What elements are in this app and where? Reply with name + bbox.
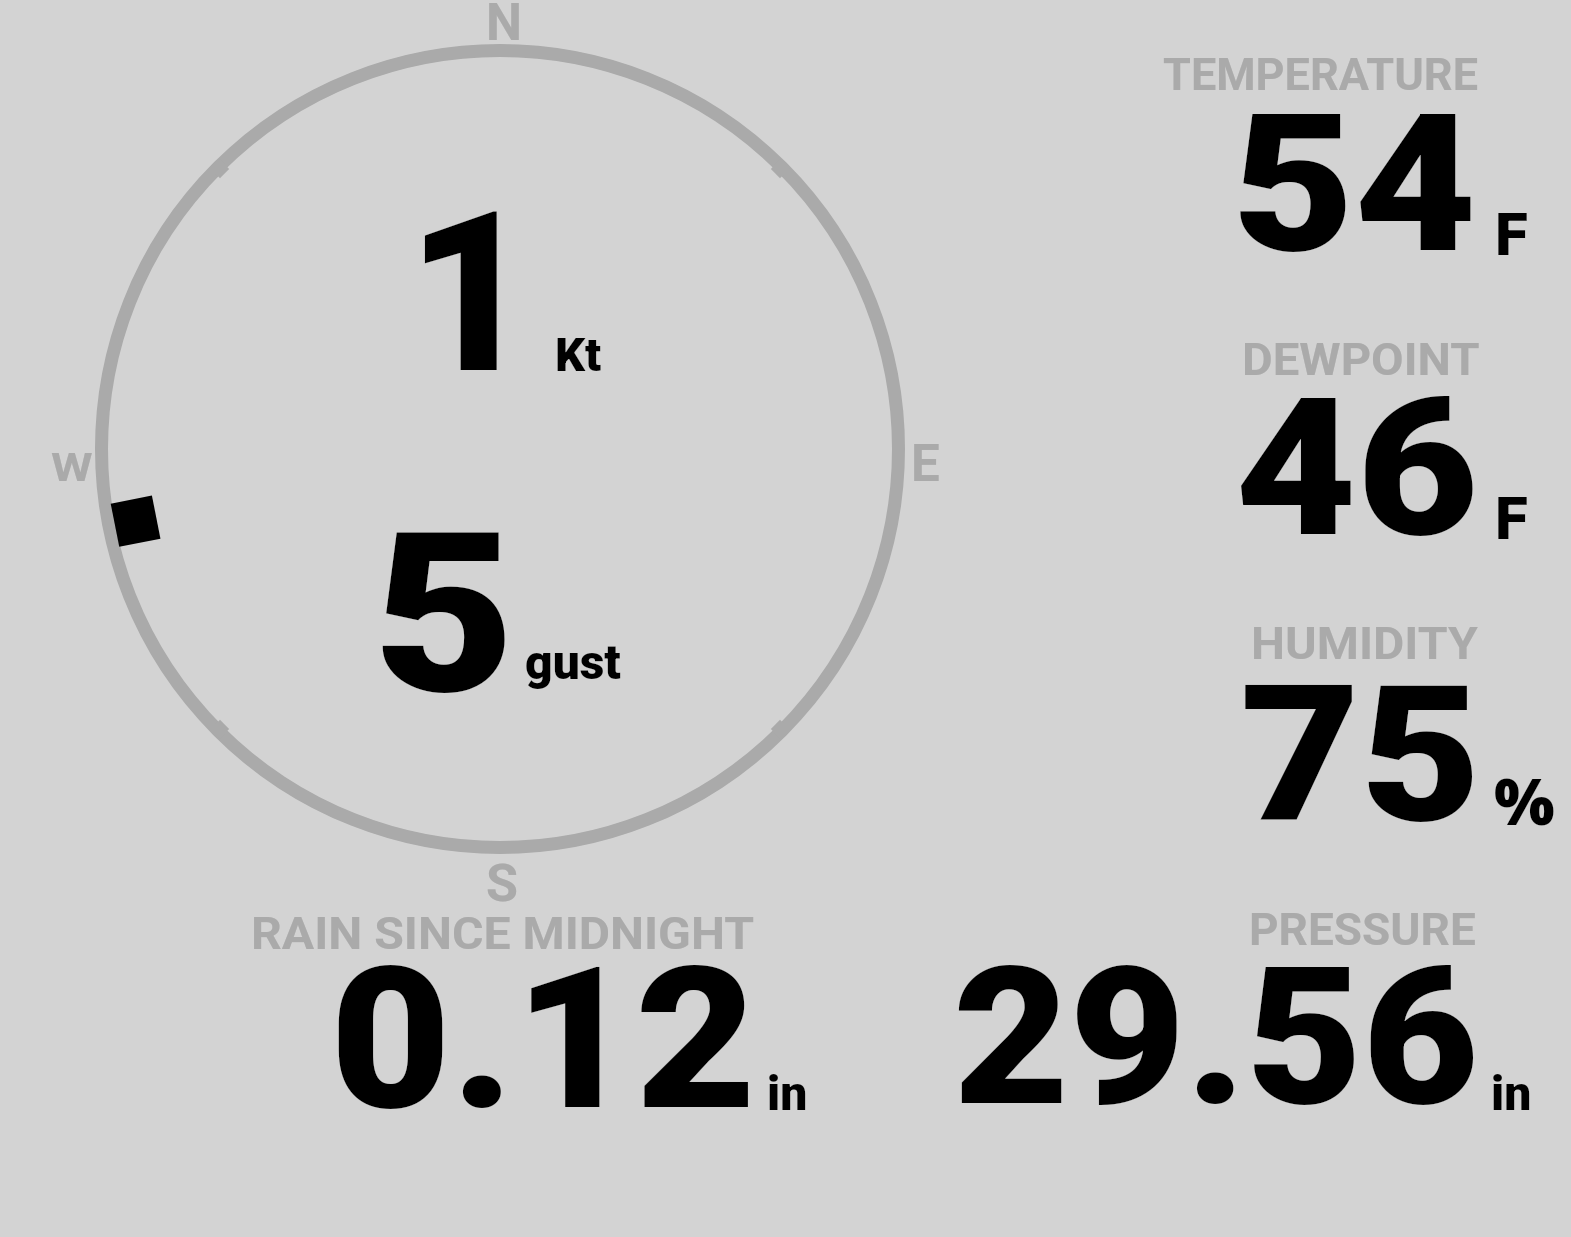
staticText: 0.12	[330, 924, 757, 1149]
staticText: in	[1491, 1065, 1532, 1121]
button[interactable]: Rain since midnight 0.12 inches	[200, 898, 820, 1123]
staticText: 46	[1235, 357, 1479, 581]
button[interactable]: Temperature 54 degrees Fahrenheit	[1120, 40, 1560, 270]
staticText: in	[767, 1065, 808, 1121]
staticText: PRESSURE	[1249, 903, 1476, 956]
button[interactable]: Dewpoint 46 degrees Fahrenheit	[1120, 325, 1560, 555]
staticText: E	[911, 434, 940, 494]
staticText: TEMPERATURE	[1163, 48, 1478, 101]
staticText: gust	[525, 634, 621, 690]
staticText: RAIN SINCE MIDNIGHT	[251, 907, 755, 960]
staticText: S	[486, 853, 519, 914]
staticText: F	[1495, 199, 1528, 269]
staticText: 1	[407, 164, 535, 424]
staticText: 75	[1240, 645, 1482, 866]
staticText: Kt	[555, 327, 602, 382]
staticText: N	[486, 0, 522, 53]
staticText: %	[1494, 757, 1555, 844]
staticText: F	[1495, 483, 1528, 553]
staticText: HUMIDITY	[1251, 617, 1478, 670]
button[interactable]: Pressure 29.56 inches	[930, 898, 1550, 1123]
staticText: DEWPOINT	[1242, 333, 1480, 386]
staticText: 29.56	[953, 926, 1479, 1150]
button[interactable]: Wind direction compass, 1 knot, gusting …	[89, 38, 911, 860]
staticText: W	[51, 445, 94, 491]
staticText: 5	[373, 484, 516, 745]
button[interactable]: Humidity 75 percent	[1120, 610, 1560, 840]
staticText: 54	[1232, 73, 1477, 297]
